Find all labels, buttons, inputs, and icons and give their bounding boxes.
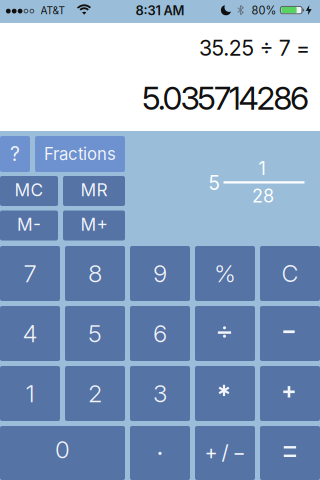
button[interactable]: 7 — [0, 246, 60, 301]
staticText: MR — [80, 179, 107, 200]
button[interactable]: 6 — [130, 306, 190, 361]
button[interactable]: M+ — [63, 210, 125, 240]
button[interactable]: M- — [0, 210, 58, 240]
staticText: 5 — [88, 319, 102, 348]
staticText: 3 — [153, 379, 167, 408]
button[interactable]: % — [195, 246, 255, 301]
staticText: 1 — [25, 379, 34, 408]
staticText: M+ — [80, 214, 107, 235]
staticText: C — [281, 259, 298, 288]
button[interactable]: . — [130, 426, 190, 480]
staticText: AT&T — [40, 4, 65, 17]
staticText: + / − — [204, 440, 245, 465]
button[interactable]: 8 — [65, 246, 125, 301]
staticText: MC — [14, 179, 43, 200]
button[interactable]: ÷ — [195, 306, 255, 361]
button[interactable]: 5 — [65, 306, 125, 361]
button[interactable]: MR — [63, 176, 125, 206]
button[interactable]: 0 — [0, 426, 125, 480]
staticText: 1 — [258, 158, 265, 179]
button[interactable]: 9 — [130, 246, 190, 301]
staticText: 80% — [251, 4, 276, 17]
staticText: ? — [10, 142, 20, 166]
staticText: 5.035714286 — [142, 79, 309, 117]
staticText: 7 — [23, 259, 36, 288]
staticText: 5 — [208, 171, 219, 195]
button[interactable]: * — [195, 366, 255, 421]
button[interactable]: C — [260, 246, 320, 301]
staticText: % — [214, 259, 236, 288]
staticText: Fractions — [44, 144, 116, 164]
button[interactable]: + — [260, 366, 320, 421]
staticText: 4 — [22, 319, 37, 348]
staticText: 6 — [153, 319, 167, 348]
button[interactable]: = — [260, 426, 320, 480]
button[interactable]: 2 — [65, 366, 125, 421]
staticText: 8 — [88, 259, 102, 288]
staticText: 28 — [252, 185, 274, 207]
button[interactable]: + / − — [195, 426, 255, 480]
staticText: M- — [17, 214, 41, 235]
button[interactable]: 1 — [0, 366, 60, 421]
staticText: 2 — [88, 379, 102, 408]
button[interactable]: − — [260, 306, 320, 361]
staticText: 9 — [153, 259, 167, 288]
staticText: 8:31 AM — [135, 3, 184, 18]
button[interactable]: Fractions — [35, 136, 125, 172]
button[interactable]: 3 — [130, 366, 190, 421]
staticText: 0 — [55, 435, 70, 464]
button[interactable]: ? — [0, 136, 30, 172]
staticText: 35.25 ÷ 7 = — [199, 35, 310, 61]
button[interactable]: 4 — [0, 306, 60, 361]
button[interactable]: MC — [0, 176, 58, 206]
